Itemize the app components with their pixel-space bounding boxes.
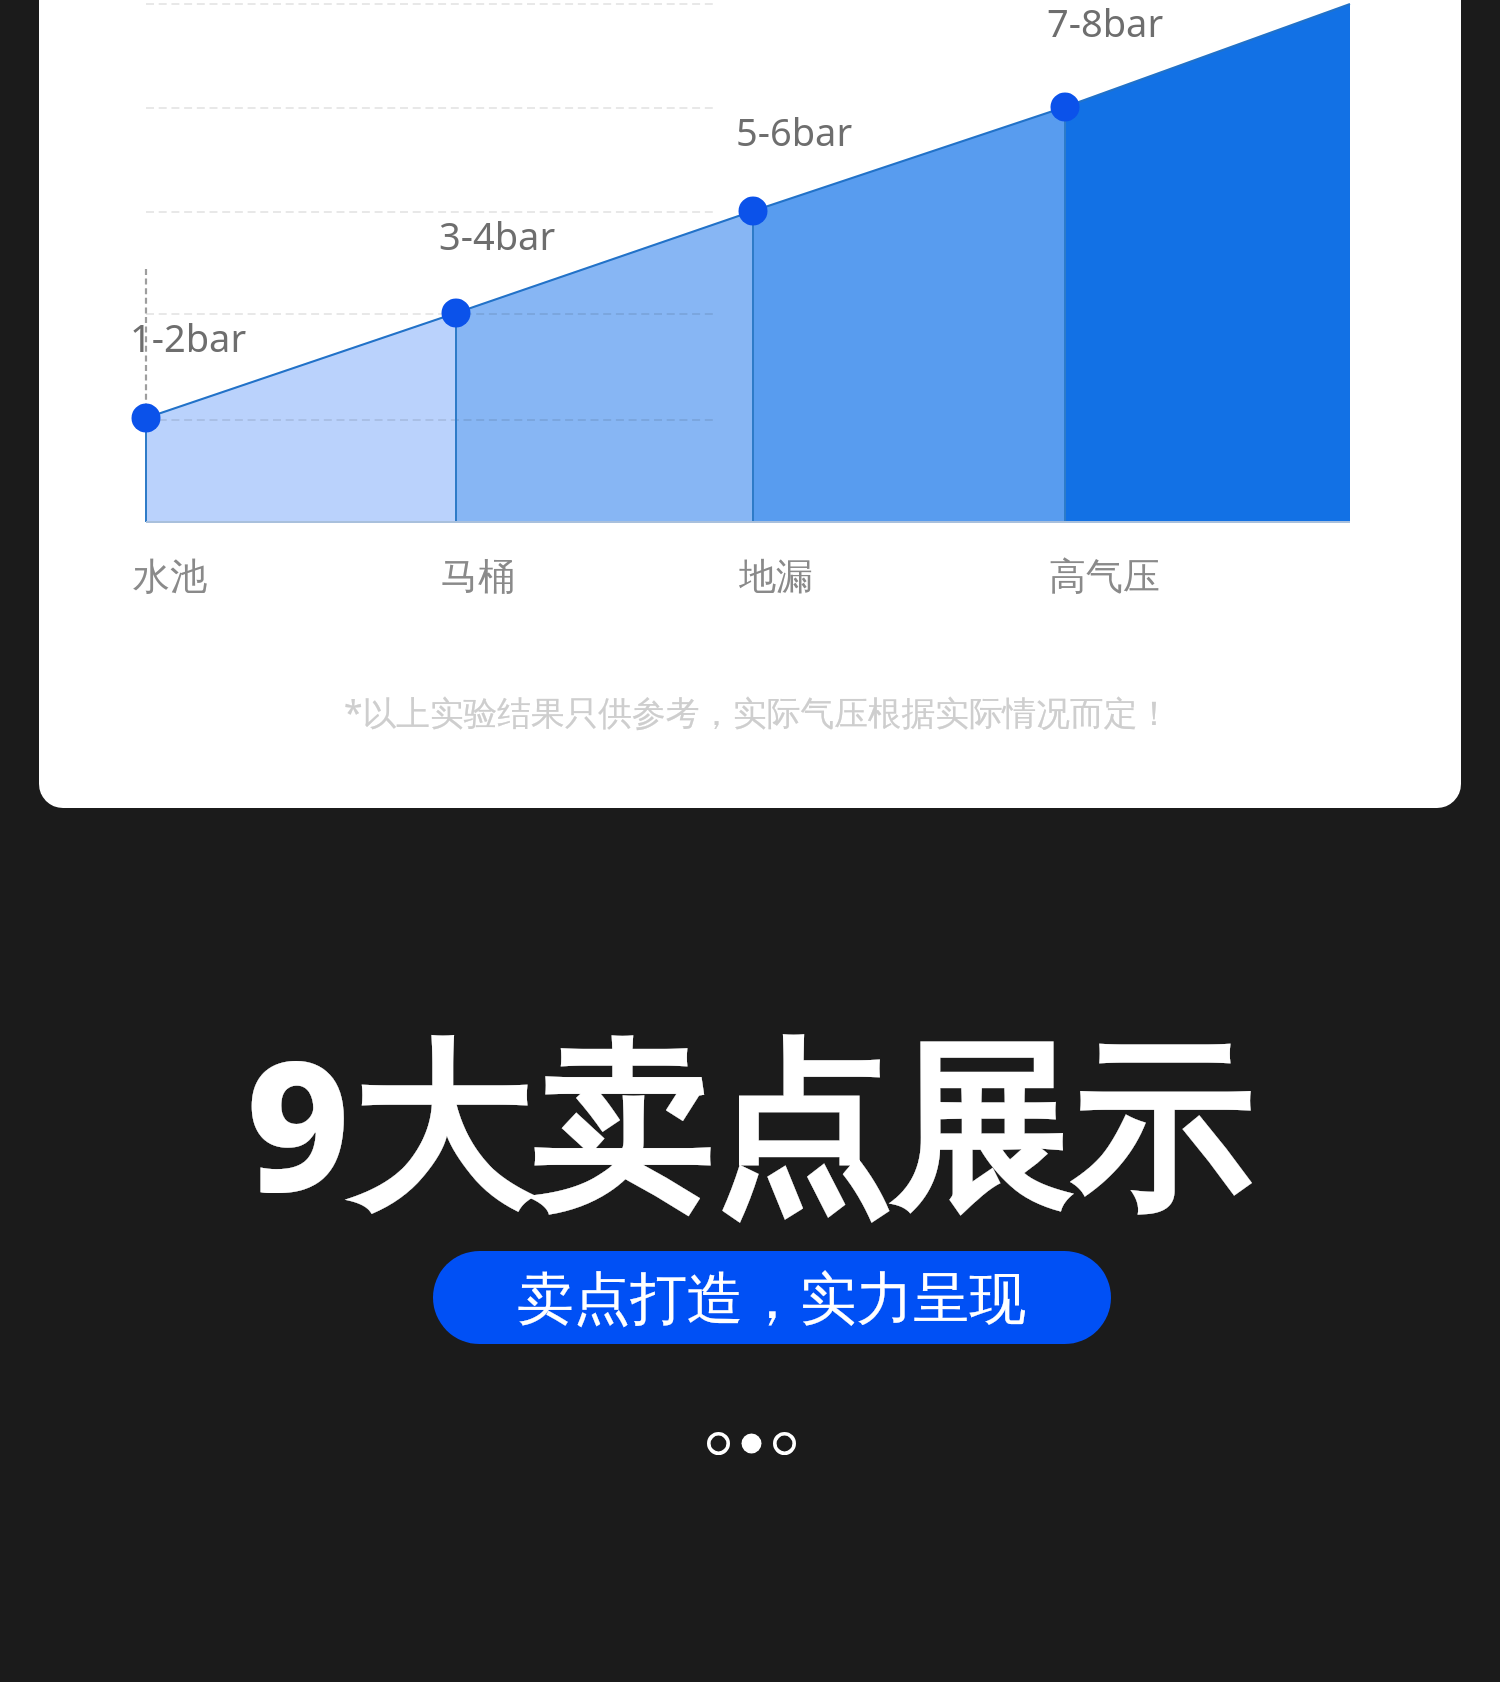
staticText: 高气压 — [1049, 553, 1160, 600]
staticText: 1-2bar — [130, 311, 247, 363]
staticText: 水池 — [133, 553, 207, 600]
button[interactable]: Page 2, current page — [740, 1432, 763, 1455]
staticText: 卖点打造，实力呈现 — [517, 1264, 1027, 1335]
staticText: 地漏 — [739, 553, 813, 600]
button[interactable]: Go to page 1 — [707, 1432, 730, 1455]
staticText: 9大卖点展示 — [246, 999, 1251, 1245]
staticText: 3-4bar — [439, 209, 556, 261]
staticText: 5-6bar — [736, 105, 853, 157]
staticText: *以上实验结果只供参考，实际气压根据实际情况而定！ — [344, 689, 1172, 735]
button[interactable]: Go to page 3 — [773, 1432, 796, 1455]
button[interactable]: 卖点打造，实力呈现 — [433, 1251, 1111, 1344]
staticText: 7-8bar — [1047, 0, 1164, 48]
staticText: 马桶 — [441, 553, 515, 600]
